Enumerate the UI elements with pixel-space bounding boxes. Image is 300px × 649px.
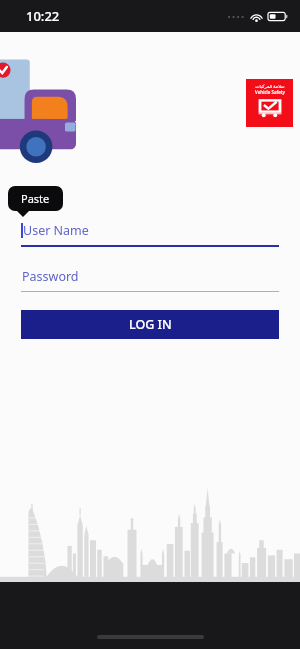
staticText: Paste [21, 191, 50, 206]
staticText: 10:22 [26, 7, 60, 25]
staticText: LOG IN [129, 316, 172, 333]
button[interactable]: LOG IN [21, 310, 279, 339]
button[interactable]: Paste [8, 186, 63, 211]
staticText: User Name [23, 222, 89, 239]
button[interactable]: Password [21, 268, 279, 292]
staticText: Password [22, 268, 79, 285]
staticText: سلامة المركبات [255, 83, 285, 89]
button[interactable]: User Name [21, 222, 279, 247]
other: Vehicle Safety logo [246, 79, 293, 127]
staticText: Vehicle Safety [255, 89, 285, 95]
